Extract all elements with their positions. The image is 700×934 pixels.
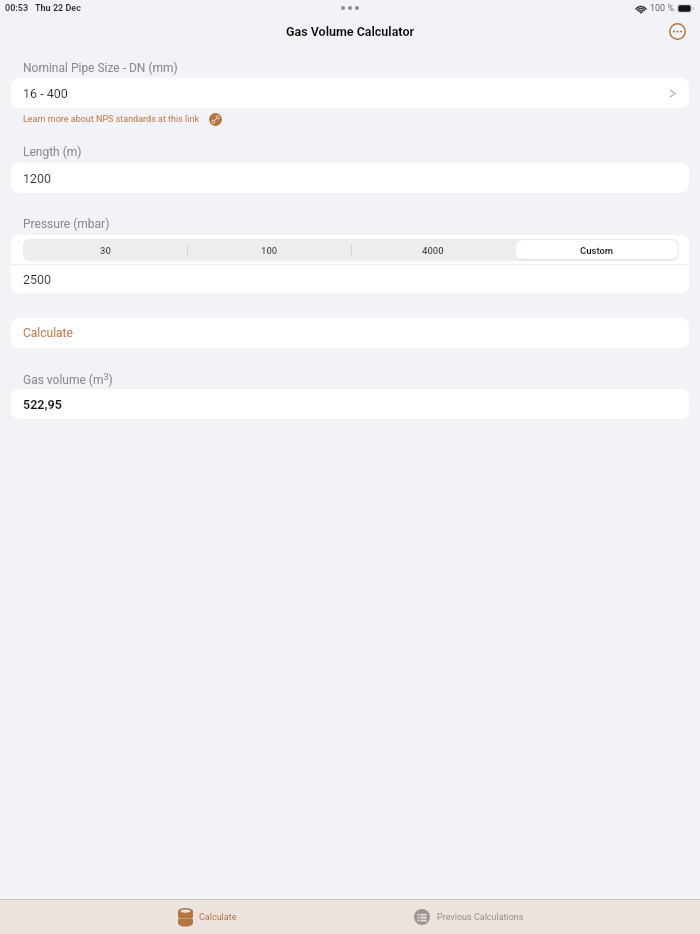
staticText: Custom [580, 245, 614, 256]
staticText: Thu 22 Dec [35, 3, 81, 14]
staticText: 4000 [422, 245, 444, 256]
staticText: Previous Calculations [437, 912, 524, 923]
staticText: 100 [261, 245, 278, 256]
staticText: Custom [580, 245, 614, 256]
staticText: Length (m) [23, 145, 82, 159]
staticText: 00:53 [5, 3, 29, 14]
staticText: Calculate [23, 326, 73, 340]
button[interactable]: Calculate [11, 318, 689, 348]
button[interactable]: Learn more about NPS standards at this l… [23, 111, 243, 127]
staticText: Learn more about NPS standards at this l… [23, 114, 199, 125]
staticText: 2500 [23, 272, 52, 287]
staticText: Calculate [199, 912, 237, 923]
staticText: 16 - 400 [23, 86, 68, 101]
staticText: 522,95 [23, 397, 62, 412]
button[interactable]: More options [665, 19, 689, 43]
button[interactable]: 16 - 400 [11, 78, 689, 108]
button[interactable]: 1200 [11, 163, 689, 193]
staticText: Gas volume (m3) [23, 372, 113, 387]
button[interactable]: Calculate [162, 900, 252, 934]
staticText: Gas Volume Calculator [286, 24, 415, 39]
staticText: 100 % [650, 3, 674, 14]
staticText: 1200 [23, 171, 52, 186]
button[interactable]: Previous Calculations [403, 900, 534, 934]
button[interactable]: Custom [515, 239, 679, 261]
staticText: Nominal Pipe Size - DN (mm) [23, 61, 178, 75]
staticText: Pressure (mbar) [23, 217, 110, 231]
staticText: 30 [100, 245, 111, 256]
button[interactable]: 30 [23, 239, 187, 261]
button[interactable]: 100 [187, 239, 351, 261]
button[interactable]: 4000 [351, 239, 515, 261]
button[interactable]: Custom [516, 240, 678, 259]
